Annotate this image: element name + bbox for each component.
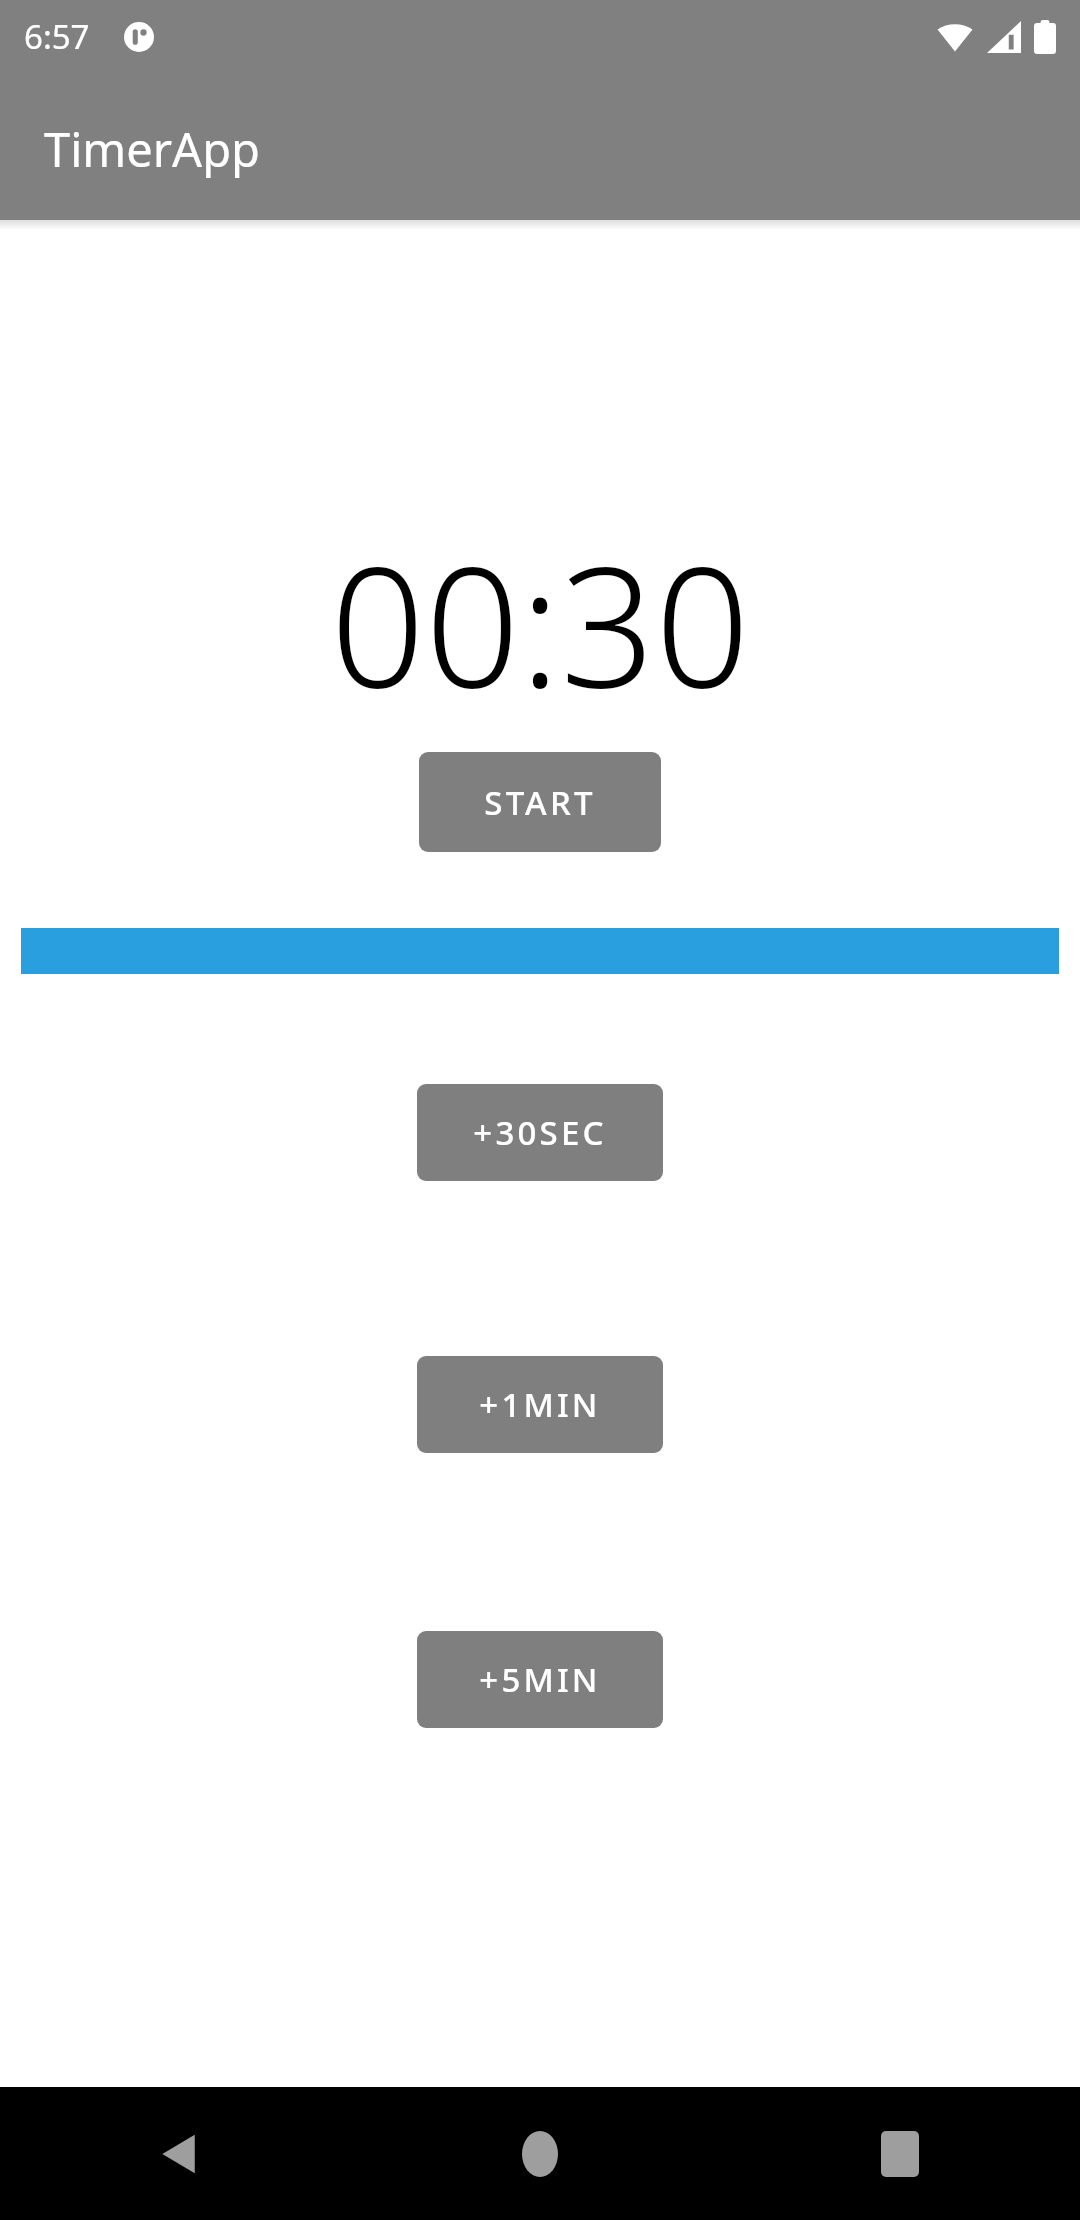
staticText: 6:57	[24, 14, 90, 59]
button[interactable]: Back	[0, 2087, 360, 2220]
button[interactable]: +5MIN	[417, 1631, 663, 1728]
staticText: +30SEC	[473, 1110, 607, 1155]
button[interactable]: Recent apps	[720, 2087, 1080, 2220]
button[interactable]: START	[419, 752, 661, 852]
staticText: START	[484, 780, 596, 825]
button[interactable]: +30SEC	[417, 1084, 663, 1181]
button[interactable]: Home	[360, 2087, 720, 2220]
button[interactable]: +1MIN	[417, 1356, 663, 1453]
staticText: +1MIN	[479, 1382, 601, 1427]
staticText: +5MIN	[479, 1657, 601, 1702]
staticText: TimerApp	[44, 117, 260, 181]
staticText: 00:30	[330, 510, 750, 736]
